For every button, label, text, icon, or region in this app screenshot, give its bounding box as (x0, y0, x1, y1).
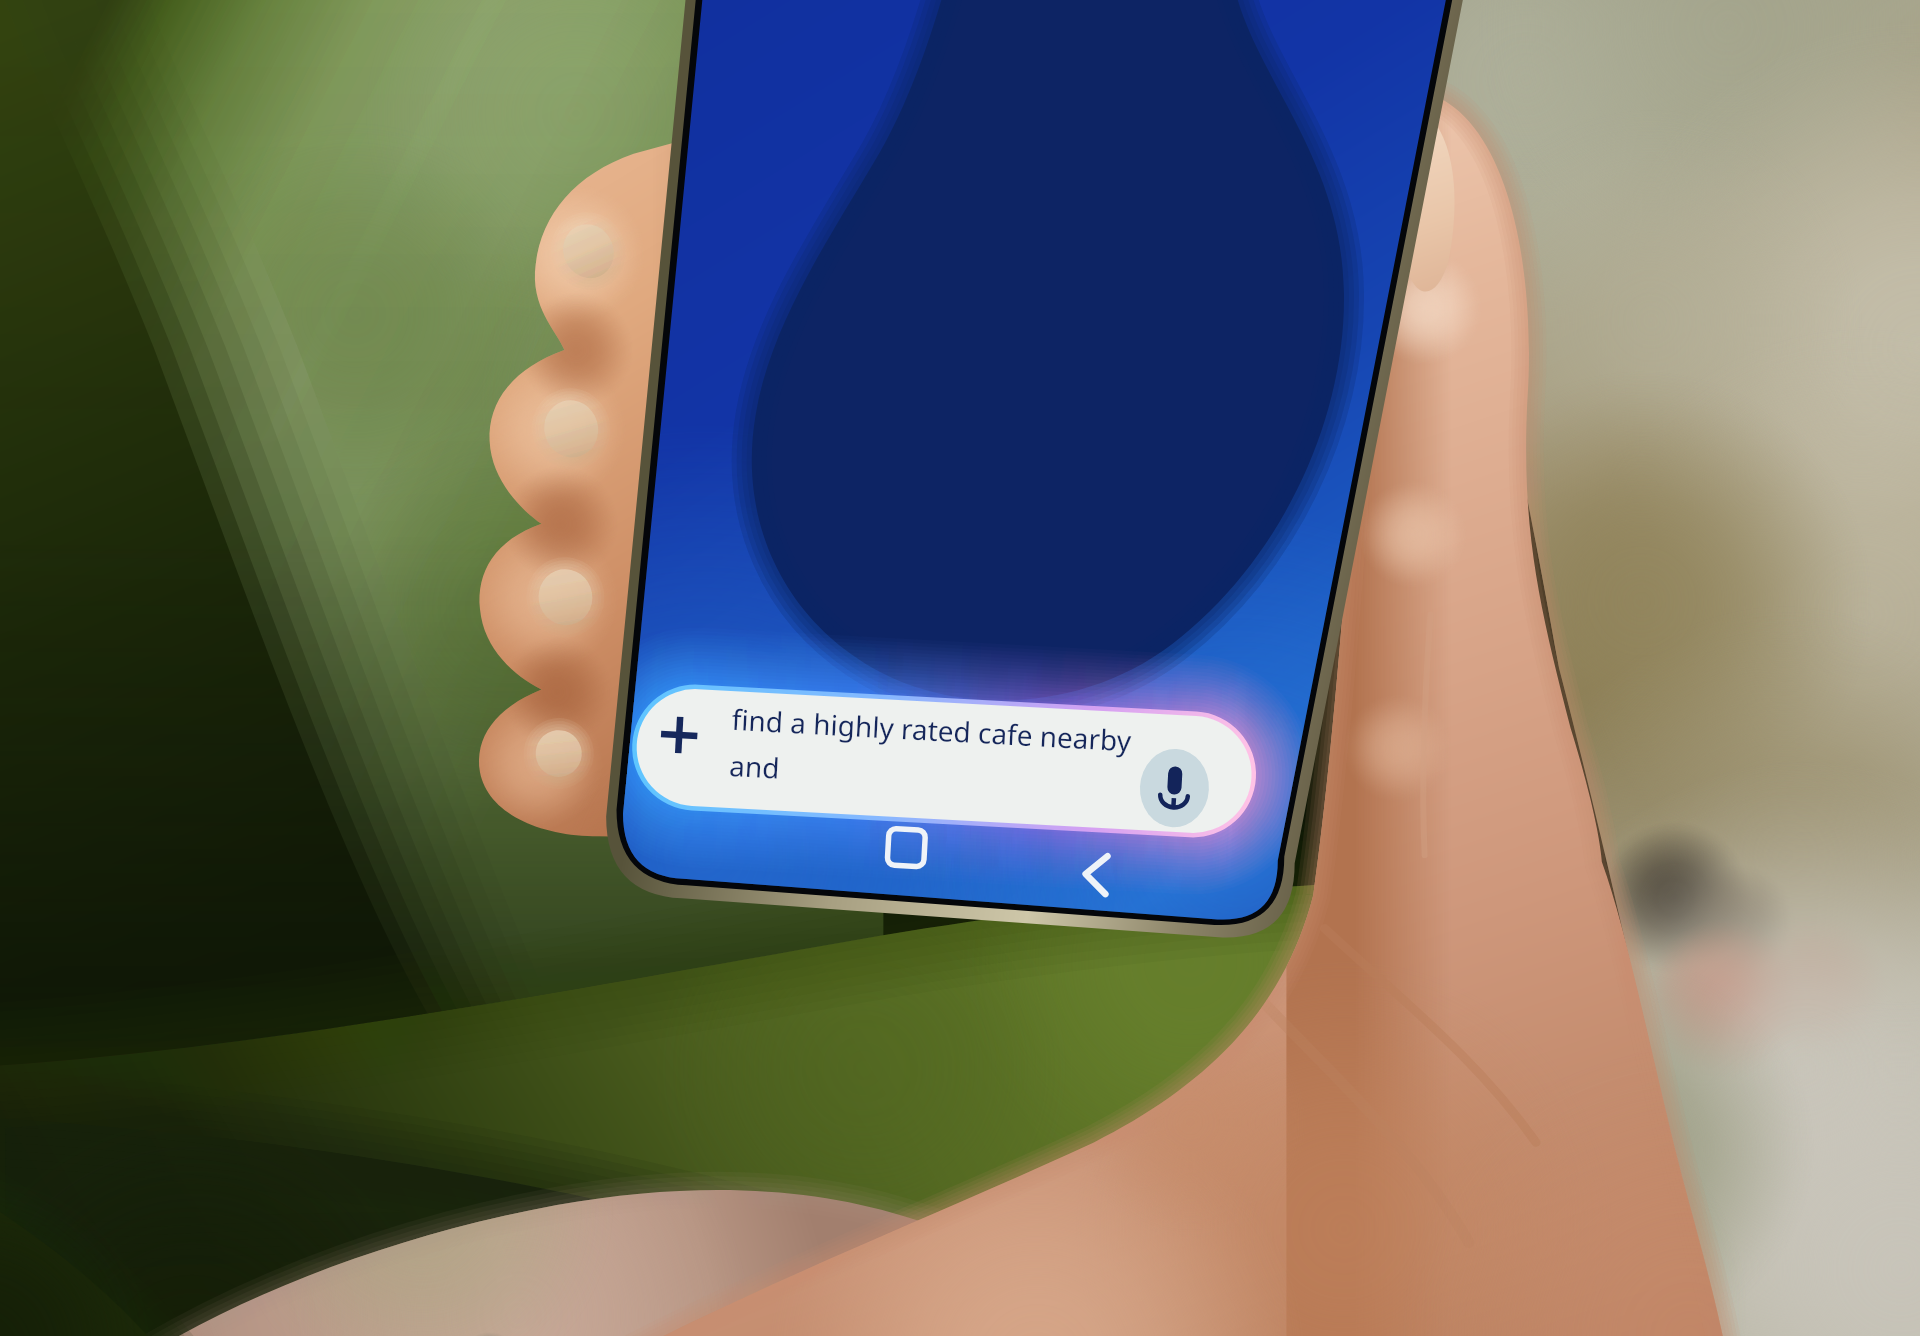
button[interactable]: find a highly rated cafe nearby and (618, 680, 1261, 811)
button[interactable]: Home (887, 836, 964, 905)
button[interactable]: Back (1062, 844, 1139, 913)
button[interactable]: Assistant screen (672, 0, 1405, 922)
staticText: find a highly rated cafe nearby and (618, 745, 635, 746)
button[interactable]: Add (637, 697, 710, 766)
button[interactable]: Voice input (1152, 751, 1229, 823)
